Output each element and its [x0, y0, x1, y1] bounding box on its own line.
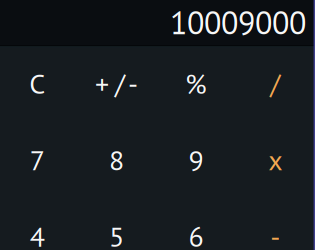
button[interactable]: Clear [0, 45, 77, 121]
button[interactable]: Four [0, 198, 77, 250]
staticText: 5 [109, 218, 124, 250]
button[interactable]: Plus minus [77, 45, 156, 121]
staticText: - [270, 218, 280, 250]
staticText: 7 [30, 142, 45, 178]
staticText: 6 [188, 218, 203, 250]
staticText: / [270, 65, 280, 101]
button[interactable]: Multiply [236, 121, 315, 198]
staticText: 10009000 [170, 2, 306, 43]
button[interactable]: Subtract [236, 198, 315, 250]
button[interactable]: Nine [156, 121, 236, 198]
staticText: % [185, 65, 207, 101]
button[interactable]: Five [77, 198, 156, 250]
button[interactable]: Seven [0, 121, 77, 198]
staticText: + / - [95, 65, 138, 101]
button[interactable]: Eight [77, 121, 156, 198]
staticText: 9 [188, 142, 203, 178]
staticText: C [29, 65, 45, 101]
button[interactable]: Divide [236, 45, 315, 121]
staticText: 4 [30, 218, 45, 250]
staticText: 8 [109, 142, 124, 178]
staticText: x [268, 142, 282, 178]
button[interactable]: Six [156, 198, 236, 250]
button[interactable]: Percent [156, 45, 236, 121]
